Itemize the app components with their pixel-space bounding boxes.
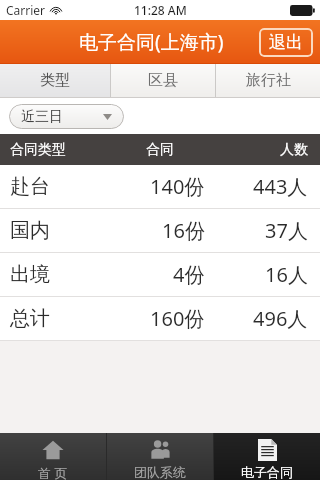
staticText: 总计 xyxy=(10,306,50,331)
staticText: 团队系统 xyxy=(134,464,186,480)
staticText: 160份 xyxy=(150,305,205,332)
staticText: 国内 xyxy=(10,218,50,243)
staticText: 4份 xyxy=(173,261,205,288)
staticText: 旅行社 xyxy=(246,71,291,90)
staticText: 类型 xyxy=(40,71,70,90)
button[interactable]: 出境 xyxy=(0,253,320,296)
button[interactable]: 总计 xyxy=(0,297,320,340)
other: 首页 xyxy=(42,439,64,461)
button[interactable]: 近三日 xyxy=(9,104,124,129)
staticText: 区县 xyxy=(148,71,178,90)
button[interactable]: 团队系统 xyxy=(107,433,213,480)
other: 电子合同 xyxy=(258,439,277,461)
button[interactable]: 赴台 xyxy=(0,165,320,208)
staticText: 出境 xyxy=(10,262,50,287)
button[interactable]: 旅行社 xyxy=(216,64,320,97)
staticText: 443人 xyxy=(253,173,308,200)
staticText: 496人 xyxy=(253,305,308,332)
staticText: 电子合同(上海市) xyxy=(79,29,224,55)
staticText: 电子合同 xyxy=(241,464,293,480)
button[interactable]: 电子合同 xyxy=(214,433,320,480)
staticText: 37人 xyxy=(265,217,308,244)
staticText: 人数 xyxy=(280,141,308,159)
staticText: 合同类型 xyxy=(10,141,66,159)
staticText: 赴台 xyxy=(10,174,50,199)
button[interactable]: 类型 xyxy=(0,64,110,97)
button[interactable]: 区县 xyxy=(111,64,215,97)
staticText: Carrier xyxy=(6,2,46,18)
button[interactable]: 国内 xyxy=(0,209,320,252)
staticText: 16份 xyxy=(162,217,205,244)
staticText: 11:28 AM xyxy=(134,2,187,18)
staticText: 退出 xyxy=(269,32,303,53)
staticText: 近三日 xyxy=(21,108,63,126)
staticText: 合同 xyxy=(146,141,174,159)
staticText: 首 页 xyxy=(38,464,68,480)
button[interactable]: 退出 xyxy=(259,28,313,57)
staticText: 140份 xyxy=(150,173,205,200)
staticText: 16人 xyxy=(265,261,308,288)
button[interactable]: 首页 xyxy=(0,433,106,480)
other: 团队系统 xyxy=(148,438,172,462)
